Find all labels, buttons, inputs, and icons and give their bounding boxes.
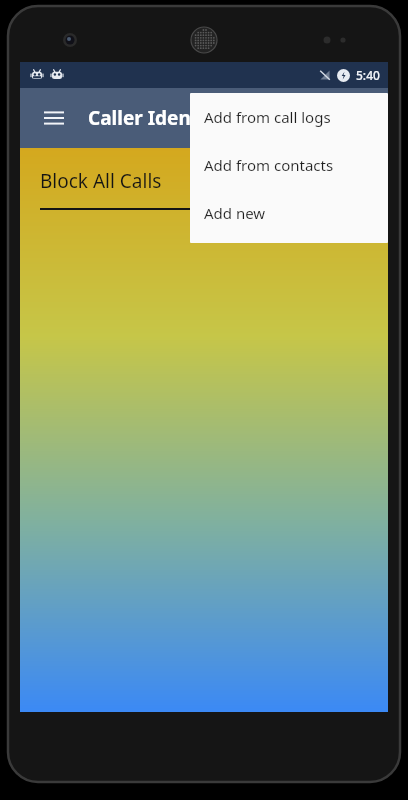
- staticText: 5:40: [356, 67, 380, 83]
- staticText: Add from contacts: [204, 155, 334, 175]
- staticText: Caller Identification: [88, 105, 278, 131]
- button[interactable]: Open navigation drawer: [36, 100, 72, 136]
- staticText: Add from call logs: [204, 107, 331, 127]
- staticText: Block All Calls: [40, 168, 162, 194]
- button[interactable]: Add from contacts: [190, 141, 388, 189]
- staticText: Add new: [204, 203, 266, 223]
- button[interactable]: Add from call logs: [190, 93, 388, 141]
- button[interactable]: Block All Calls: [20, 148, 388, 210]
- button[interactable]: Add new: [190, 189, 388, 237]
